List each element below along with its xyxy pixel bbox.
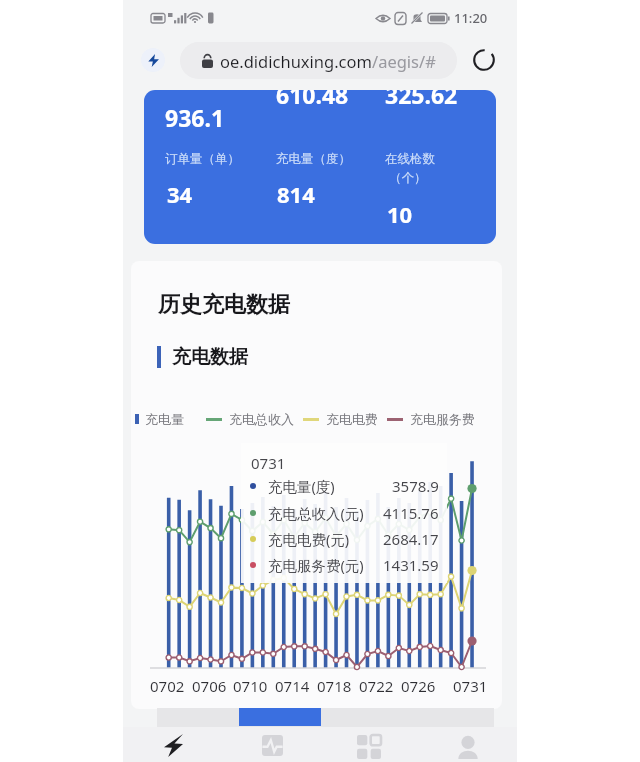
staticText: 4115.76: [383, 503, 439, 523]
staticText: 1431.59: [383, 555, 439, 575]
staticText: 325.62: [385, 90, 458, 110]
staticText: 充电量: [145, 411, 184, 427]
staticText: 充电电费(元): [268, 529, 350, 549]
staticText: 充电量(度): [268, 476, 335, 496]
staticText: 充电总收入: [229, 411, 294, 427]
button[interactable]: Statistics: [236, 727, 308, 762]
staticText: 0710: [233, 676, 268, 696]
staticText: 0706: [192, 676, 227, 696]
button[interactable]: Reload page: [468, 44, 500, 76]
staticText: 充电服务费(元): [268, 555, 364, 575]
staticText: 历史充电数据: [158, 291, 290, 319]
staticText: oe.didichuxing.com: [220, 50, 372, 72]
button[interactable]: Apps: [333, 727, 405, 762]
staticText: 0718: [317, 676, 352, 696]
button[interactable]: oe.didichuxing.com: [180, 42, 457, 79]
staticText: 11:20: [454, 9, 488, 27]
staticText: 充电服务费: [410, 411, 475, 427]
staticText: 0702: [150, 676, 185, 696]
staticText: 充电电费: [326, 411, 378, 427]
staticText: 充电数据: [172, 345, 248, 369]
staticText: 0731: [453, 676, 488, 696]
staticText: （个）: [389, 170, 427, 186]
staticText: 订单量（单）: [165, 151, 240, 167]
staticText: 0731: [251, 453, 286, 473]
button[interactable]: Turbo mode: [141, 48, 165, 72]
staticText: 936.1: [165, 102, 225, 133]
staticText: 814: [277, 179, 315, 209]
staticText: 3578.9: [392, 476, 439, 496]
staticText: 10: [387, 199, 413, 229]
staticText: 34: [167, 179, 193, 209]
staticText: 610.48: [276, 90, 349, 110]
staticText: 充电量（度）: [276, 151, 351, 167]
staticText: 0714: [275, 676, 310, 696]
staticText: /aegis/#: [372, 50, 436, 72]
staticText: 2684.17: [383, 529, 439, 549]
button[interactable]: Charging: [137, 727, 209, 762]
staticText: 0726: [401, 676, 436, 696]
staticText: 0722: [359, 676, 394, 696]
button[interactable]: Profile: [432, 727, 504, 762]
staticText: 充电总收入(元): [268, 503, 364, 523]
staticText: 在线枪数: [385, 151, 435, 167]
